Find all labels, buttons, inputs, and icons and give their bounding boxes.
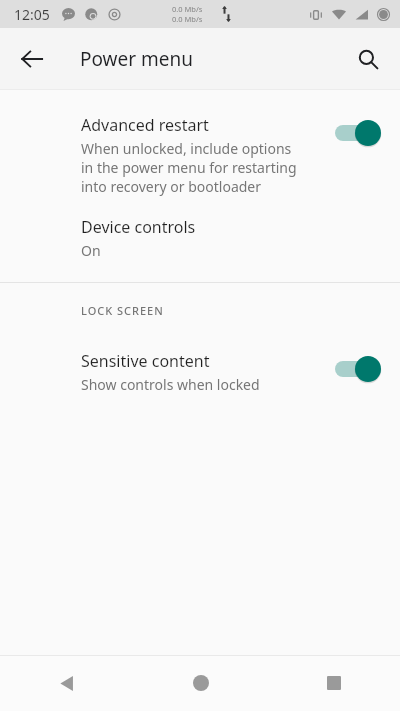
button[interactable]: Search <box>344 35 392 83</box>
button[interactable]: Advanced restart toggle <box>332 118 384 148</box>
staticText: LOCK SCREEN <box>81 303 164 318</box>
staticText: 12:05 <box>14 5 50 24</box>
button[interactable]: Sensitive content <box>0 340 400 404</box>
staticText: When unlocked, include options in the po… <box>81 139 297 196</box>
staticText: On <box>81 241 101 260</box>
button[interactable]: Home <box>134 655 267 711</box>
staticText: Advanced restart <box>81 114 209 136</box>
staticText: Show controls when locked <box>81 375 260 394</box>
staticText: 0.0 Mb/s <box>172 14 203 24</box>
staticText: 0.0 Mb/s <box>172 4 203 14</box>
button[interactable]: Sensitive content toggle <box>332 354 384 384</box>
button[interactable]: Advanced restart <box>0 104 400 206</box>
button[interactable]: Device controls <box>0 206 400 270</box>
staticText: Sensitive content <box>81 350 210 372</box>
button[interactable]: Back <box>0 655 134 711</box>
staticText: Power menu <box>80 46 194 72</box>
button[interactable]: Recent apps <box>267 655 400 711</box>
button[interactable]: Back <box>8 35 56 83</box>
staticText: Device controls <box>81 216 196 238</box>
